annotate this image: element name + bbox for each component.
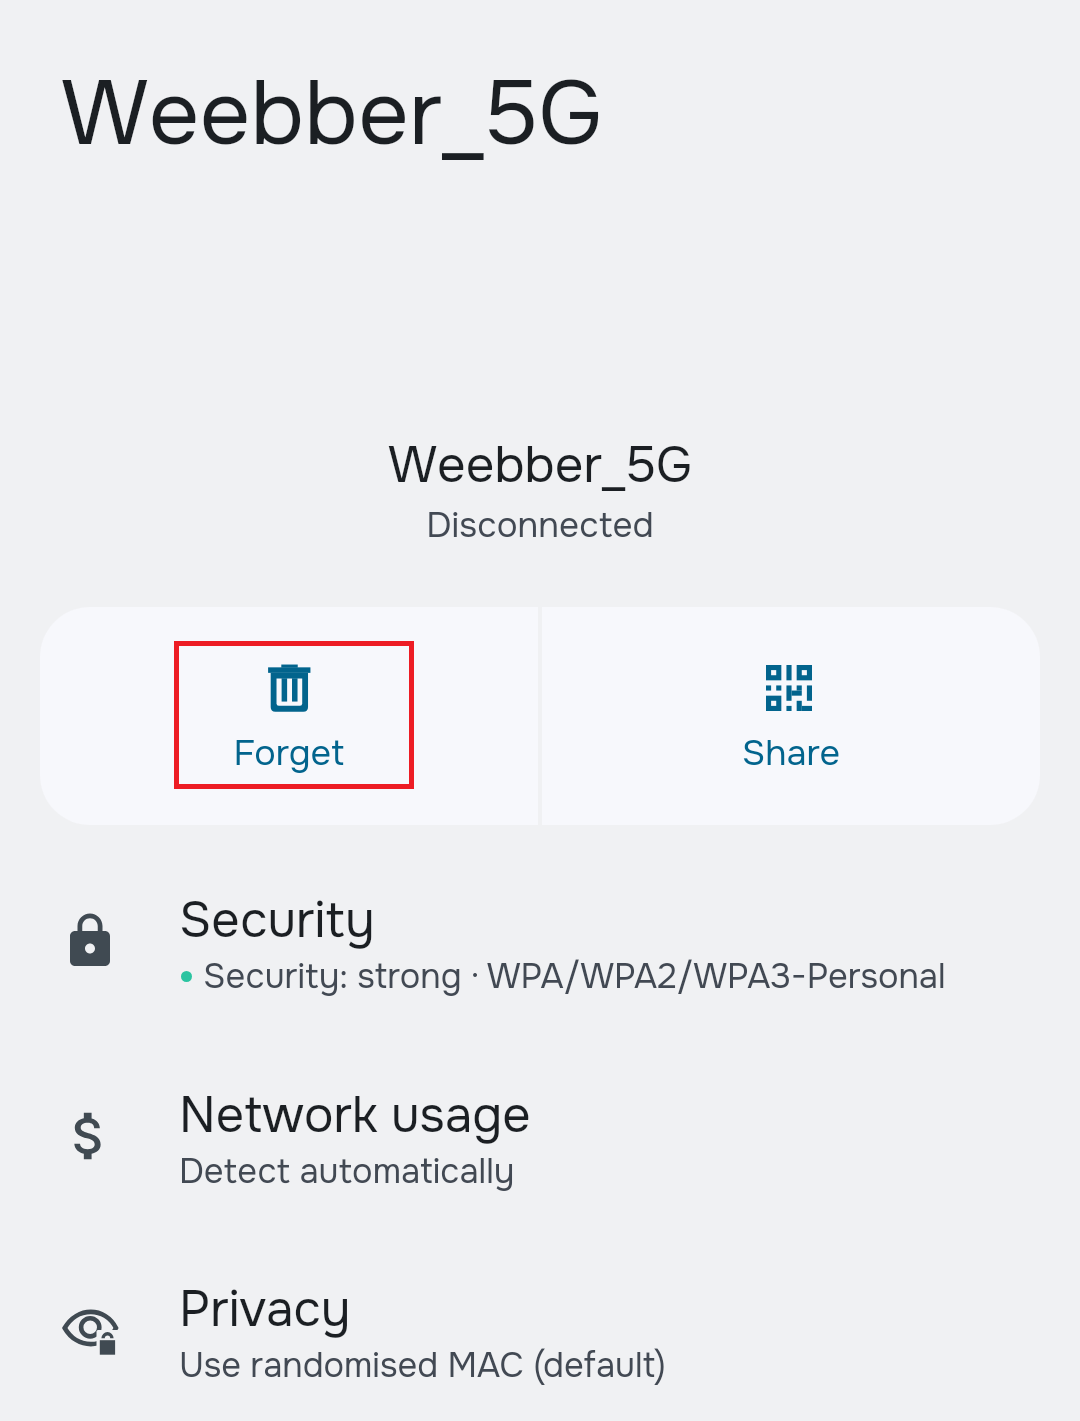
staticText: Disconnected [0,503,1080,548]
button[interactable]: Security [0,872,1080,1067]
staticText: Detect automatically [179,1150,515,1194]
staticText: Security [179,889,375,952]
button[interactable]: Network usage [0,1067,1080,1262]
staticText: Weebber_5G [61,58,603,171]
staticText: Privacy [179,1278,351,1341]
button[interactable]: Forget [40,607,538,825]
button[interactable]: Share [542,607,1040,825]
button[interactable]: Privacy [0,1261,1080,1421]
other: Share [766,665,812,711]
staticText: Forget [40,730,538,776]
staticText: Network usage [179,1084,531,1147]
staticText: Weebber_5G [0,433,1080,497]
staticText: Use randomised MAC (default) [179,1344,666,1388]
other: Forget [263,661,315,713]
staticText: Share [542,730,1040,776]
staticText: Security: strong · WPA/WPA2/WPA3-Persona… [203,955,946,999]
